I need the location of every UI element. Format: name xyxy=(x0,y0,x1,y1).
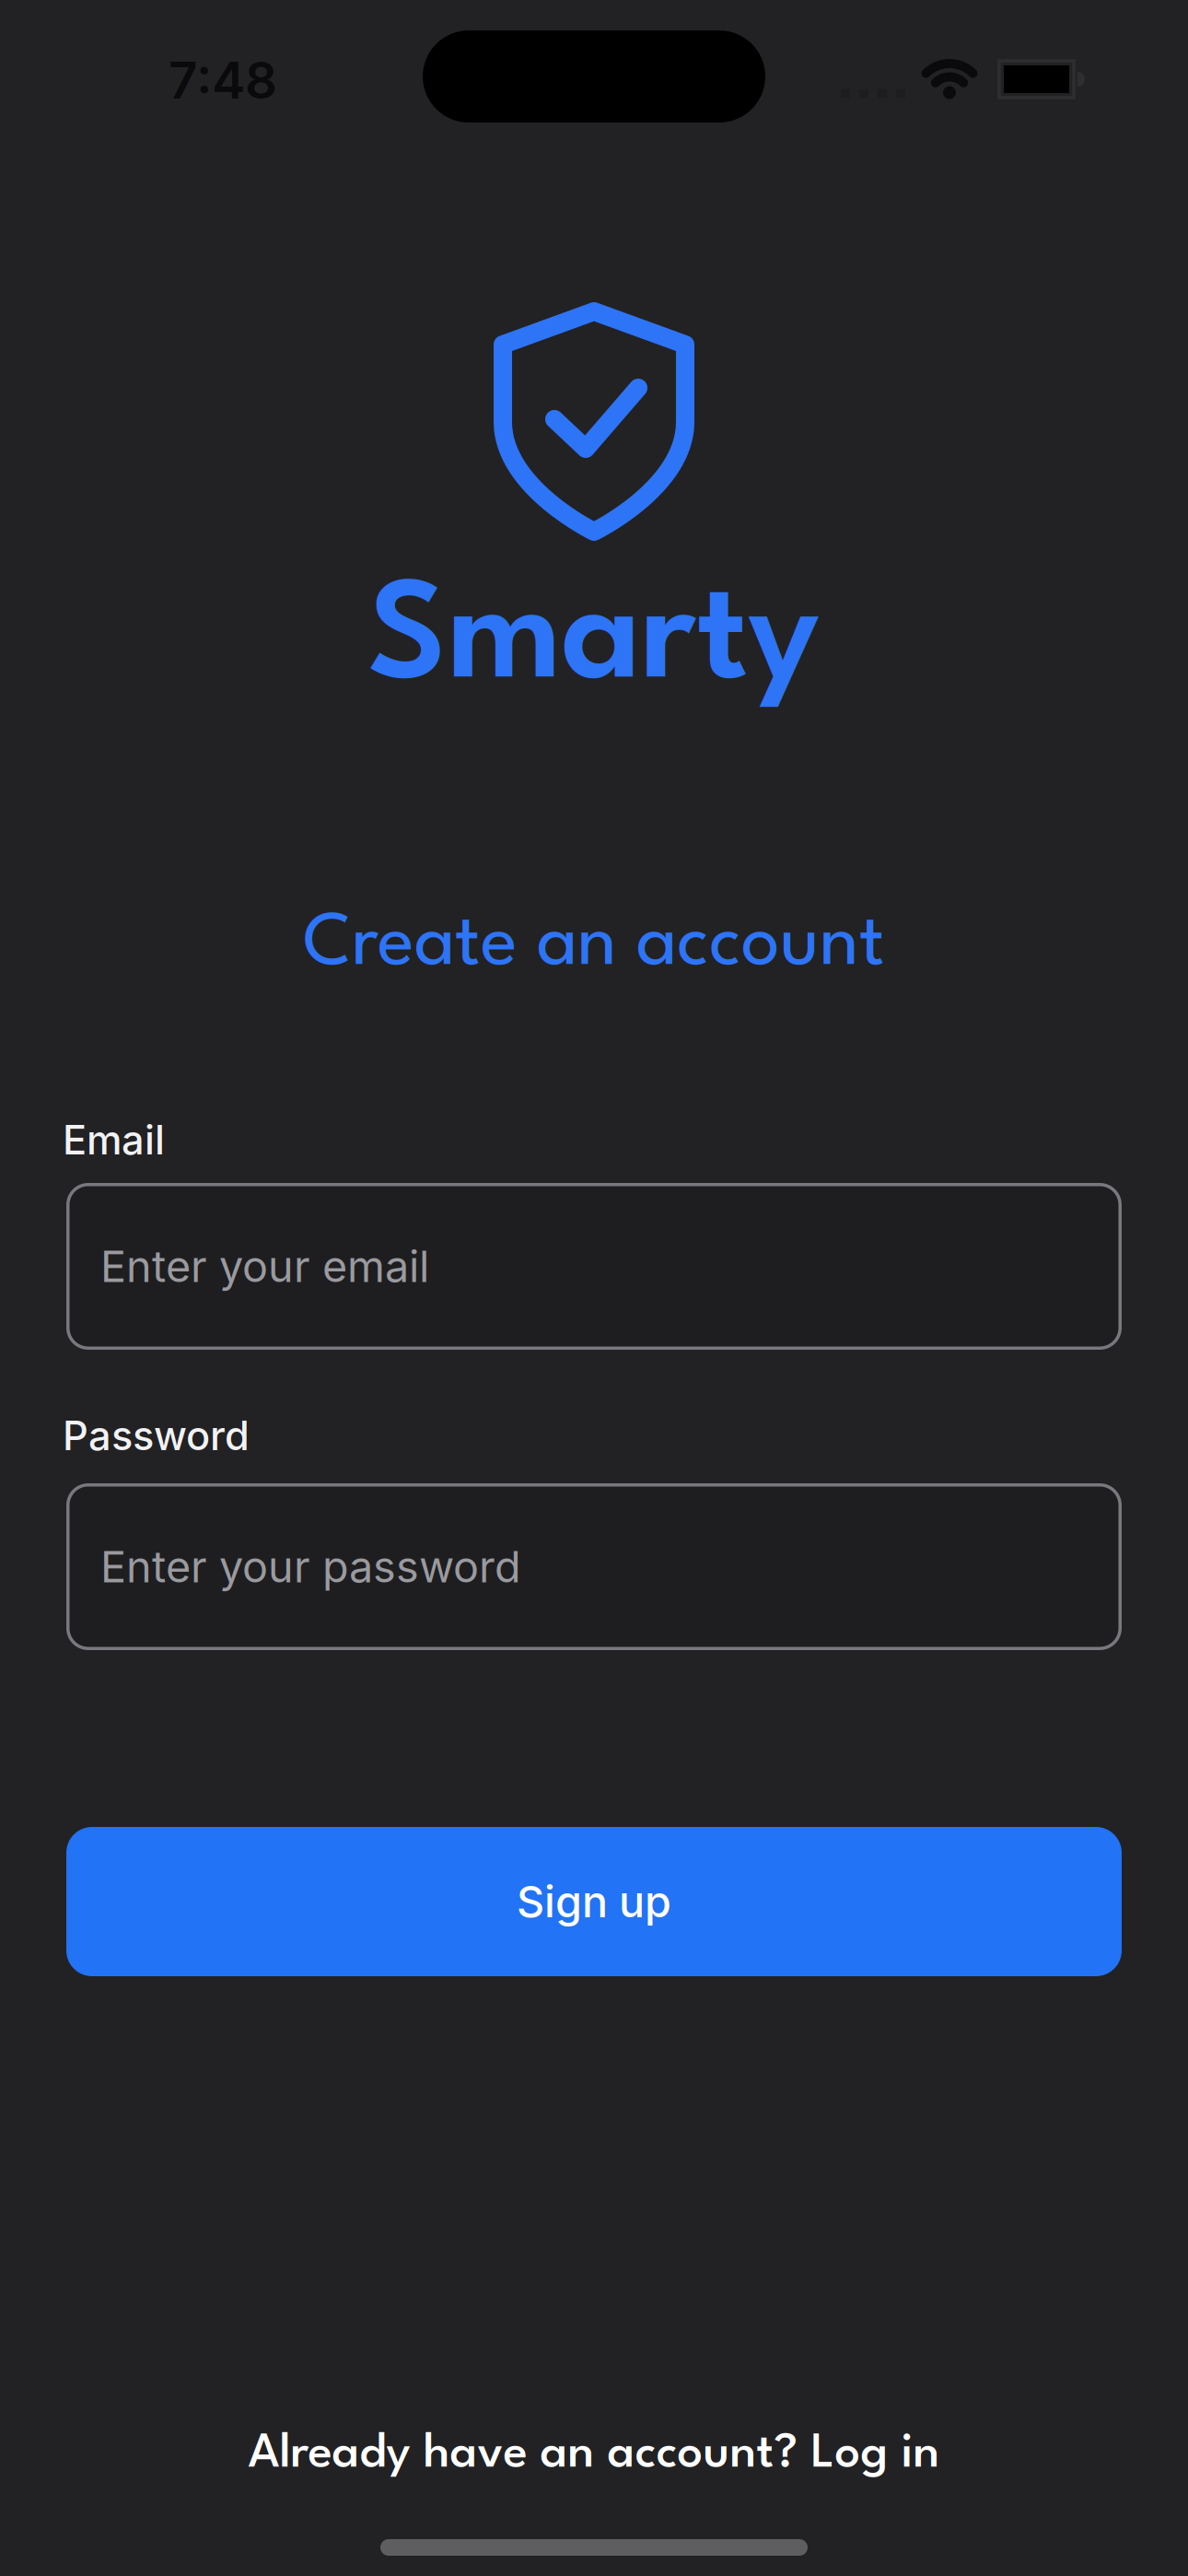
staticText: Already have an account? Log in xyxy=(248,2431,940,2478)
staticText: Email xyxy=(63,1116,165,1164)
staticText: Sign up xyxy=(517,1876,671,1928)
button[interactable]: Already have an account? Log in xyxy=(248,2431,940,2478)
staticText: Password xyxy=(63,1411,250,1460)
button[interactable]: Sign up xyxy=(66,1827,1122,1976)
staticText: Enter your password xyxy=(100,1541,521,1593)
staticText: Smarty xyxy=(368,575,820,708)
staticText: 7:48 xyxy=(169,50,277,111)
staticText: Enter your email xyxy=(100,1240,429,1292)
staticText: Create an account xyxy=(303,910,885,981)
